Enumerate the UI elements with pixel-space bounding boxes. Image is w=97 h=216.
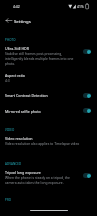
staticText: VIDEO (5, 128, 15, 132)
button[interactable]: Toggle (83, 93, 91, 98)
staticText: Smart Contrast Detection (5, 93, 48, 98)
staticText: ADVANCED (5, 162, 22, 166)
button[interactable]: Back (3, 15, 14, 26)
staticText: PHOTO (5, 38, 16, 42)
staticText: Tripod long exposure (5, 170, 41, 175)
staticText: Video resolution (5, 136, 33, 141)
staticText: When the phone is steady on a tripod, th… (5, 175, 79, 185)
button[interactable]: Toggle (83, 49, 91, 54)
button[interactable]: Toggle (83, 108, 91, 113)
staticText: Aspect ratio (5, 73, 26, 78)
staticText: PRO (5, 198, 12, 202)
button[interactable]: Aspect ratio (0, 70, 97, 90)
button[interactable]: Smart Contrast Detection (0, 90, 97, 106)
staticText: 4:42 (13, 4, 20, 9)
staticText: Stabilise still frames post-processing, … (5, 51, 79, 66)
button[interactable]: Ultra-Still HDR (0, 43, 97, 70)
staticText: Settings (14, 18, 31, 24)
button[interactable]: Mirrored selfie photo (0, 106, 97, 120)
staticText: 41% (77, 4, 84, 9)
staticText: Video resolution also applies to Timelap… (5, 141, 80, 145)
staticText: Ultra-Still HDR (5, 46, 29, 51)
button[interactable]: Video resolution (0, 133, 97, 154)
button[interactable]: Toggle (83, 173, 91, 178)
staticText: 4:3 (5, 78, 10, 82)
button[interactable]: Tripod long exposure (0, 167, 97, 190)
staticText: Mirrored selfie photo (5, 109, 41, 114)
